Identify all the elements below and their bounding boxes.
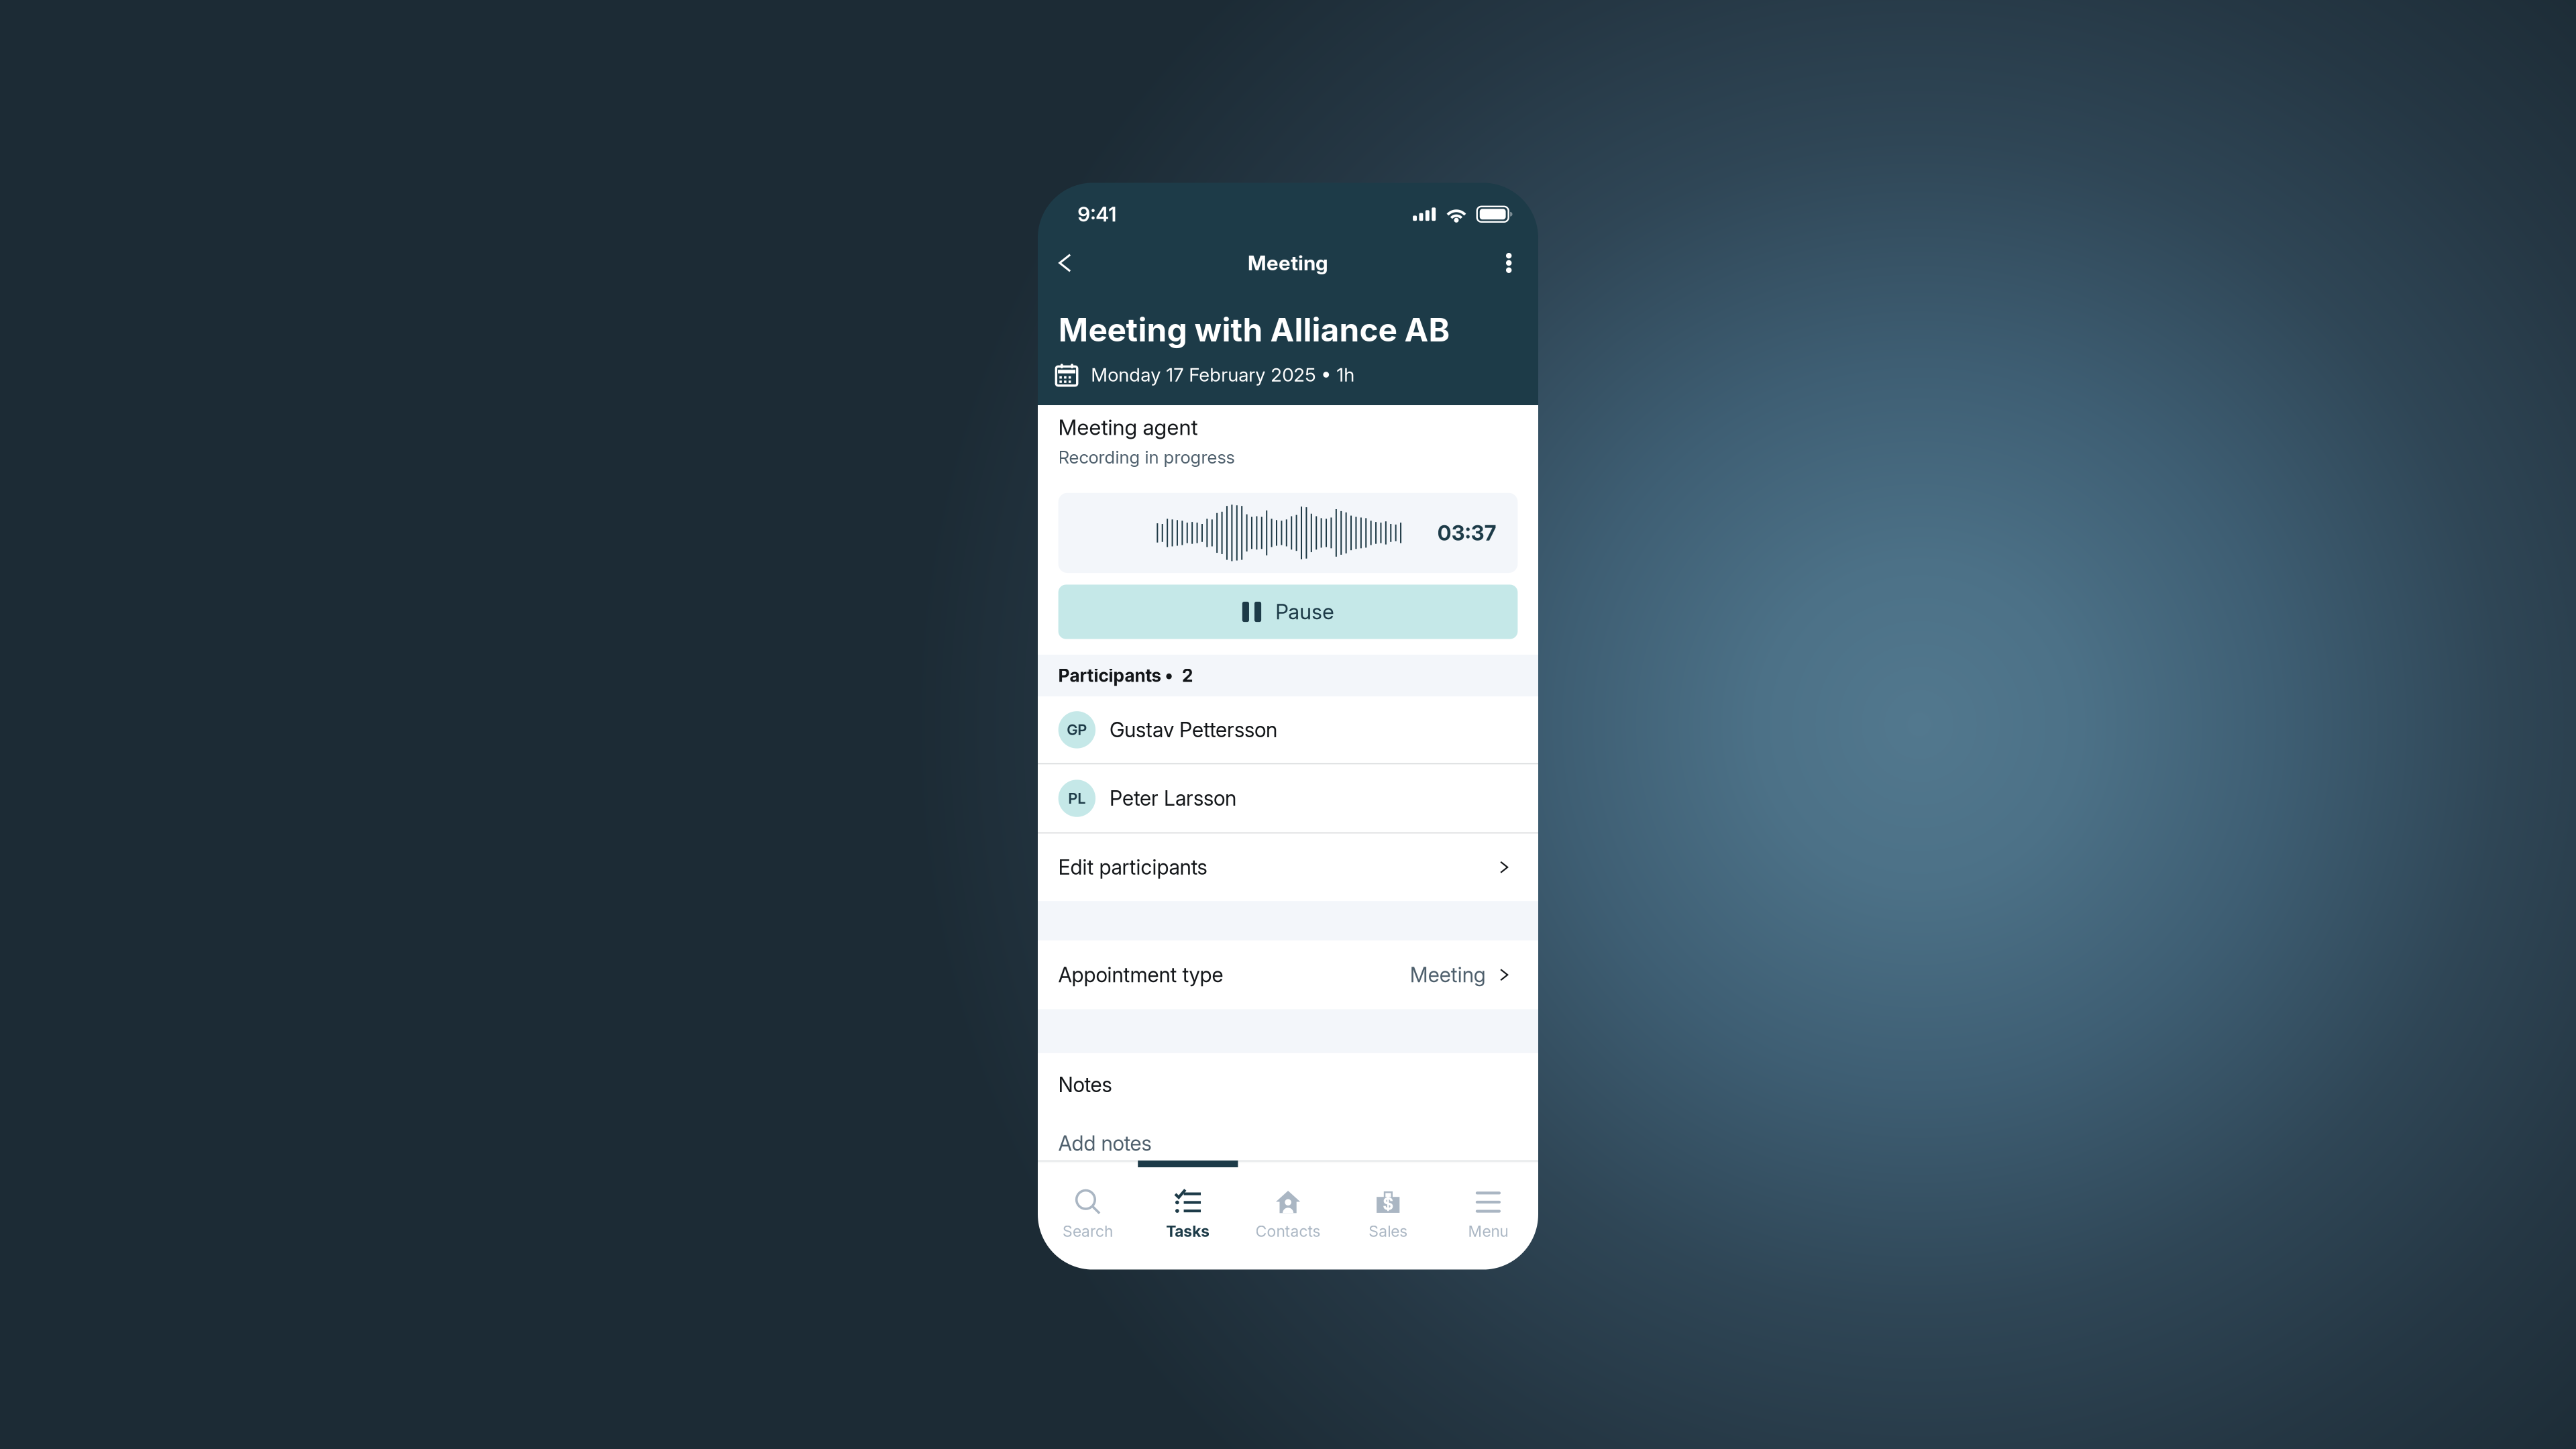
staticText: S [1383, 1194, 1393, 1214]
staticText: Edit participants [1058, 855, 1207, 880]
staticText: Appointment type [1058, 963, 1223, 987]
staticText: Meeting agent [1058, 414, 1198, 440]
staticText: 03:37 [1437, 520, 1496, 546]
button[interactable]: Search [1038, 1167, 1138, 1267]
button[interactable]: GP [1038, 696, 1538, 763]
button[interactable]: PL [1038, 764, 1538, 832]
staticText: 2 [1182, 665, 1193, 686]
button[interactable]: Edit participants [1038, 833, 1538, 901]
staticText: Meeting with Alliance AB [1058, 310, 1450, 349]
staticText: Gustav Pettersson [1110, 717, 1277, 742]
staticText: Notes [1058, 1072, 1112, 1097]
staticText: PL [1068, 790, 1086, 807]
staticText: Participants • [1058, 665, 1173, 686]
staticText: Meeting [1248, 251, 1328, 275]
staticText: Pause [1275, 599, 1334, 624]
staticText: Peter Larsson [1110, 786, 1236, 811]
staticText: Monday 17 February 2025 • 1h [1091, 363, 1355, 386]
staticText: Meeting [1410, 963, 1486, 987]
staticText: Search [1063, 1222, 1113, 1241]
button[interactable]: Back [1040, 236, 1094, 290]
staticText: 9:41 [1078, 202, 1116, 226]
staticText: Recording in progress [1058, 447, 1235, 468]
staticText: Tasks [1166, 1222, 1210, 1241]
staticText: Add notes [1058, 1131, 1152, 1156]
button[interactable]: Menu [1438, 1167, 1538, 1267]
button[interactable]: S [1338, 1167, 1438, 1267]
button[interactable]: Contacts [1238, 1167, 1338, 1267]
button[interactable]: Pause [1038, 585, 1518, 639]
staticText: Contacts [1255, 1222, 1321, 1241]
button[interactable]: Appointment type [1038, 940, 1538, 1009]
staticText: GP [1067, 721, 1087, 739]
staticText: Menu [1468, 1222, 1508, 1241]
button[interactable]: Tasks [1138, 1167, 1238, 1267]
button[interactable]: More options [1479, 236, 1533, 290]
staticText: Sales [1369, 1222, 1408, 1241]
